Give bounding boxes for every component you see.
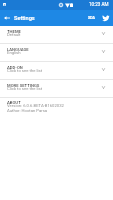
button[interactable]: ADD-ON <box>0 62 113 80</box>
staticText: Author: Hootan Parsa <box>7 108 48 113</box>
button[interactable]: ABOUT <box>0 98 113 118</box>
staticText: English <box>7 50 21 55</box>
staticText: Click to see the list <box>7 86 43 91</box>
staticText: THEME <box>7 29 21 34</box>
button[interactable]: MORE SETTINGS <box>0 80 113 98</box>
button[interactable]: THEME <box>0 26 113 44</box>
staticText: Click to see the list <box>7 68 43 73</box>
staticText: XDA <box>88 16 95 20</box>
staticText: Settings <box>14 15 35 22</box>
staticText: MORE SETTINGS <box>7 83 40 88</box>
staticText: LANGUAGE <box>7 47 29 52</box>
staticText: 10:23 AM <box>89 2 109 7</box>
staticText: ABOUT <box>7 100 21 105</box>
staticText: Default <box>7 32 21 37</box>
staticText: Version: 6.0.6.BETA-B1602032 <box>7 103 64 108</box>
button[interactable]: XDA forums <box>84 10 98 26</box>
staticText: ADD-ON <box>7 65 23 70</box>
button[interactable]: Back <box>0 10 14 26</box>
button[interactable]: Twitter <box>98 10 113 26</box>
button[interactable]: LANGUAGE <box>0 44 113 62</box>
